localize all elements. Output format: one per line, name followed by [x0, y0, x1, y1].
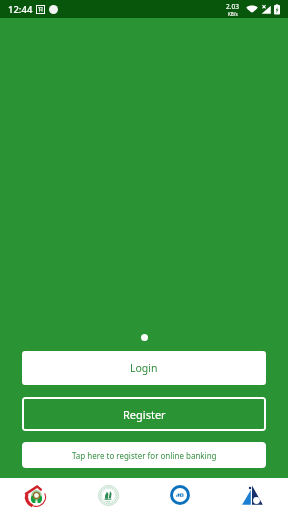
button[interactable]: Developer logo	[216, 478, 288, 512]
button[interactable]: Register	[22, 397, 266, 431]
button[interactable]: Payment network	[144, 478, 216, 512]
staticText: KB/s	[228, 11, 238, 17]
staticText: 12:44	[8, 3, 33, 16]
button[interactable]: Tap here to register for online banking	[22, 442, 266, 468]
staticText: 2.03	[226, 2, 239, 11]
staticText: Login	[130, 361, 158, 375]
button[interactable]: Login	[22, 351, 266, 385]
staticText: Tap here to register for online banking	[72, 450, 217, 461]
button[interactable]: Bank logo	[0, 478, 72, 512]
button[interactable]: Central bank seal	[72, 478, 144, 512]
staticText: Register	[123, 407, 166, 422]
